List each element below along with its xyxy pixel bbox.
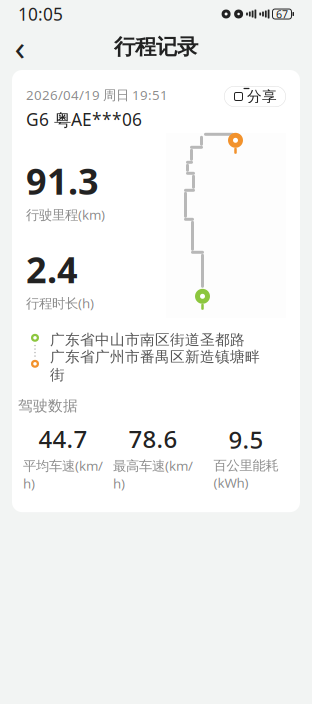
staticText: 最高车速(km/h)	[113, 457, 193, 492]
button[interactable]: Back	[0, 28, 40, 66]
staticText: 67	[276, 7, 288, 21]
staticText: 驾驶数据	[18, 397, 78, 415]
staticText: ‹	[14, 24, 25, 70]
staticText: 2026/04/19 周日 19:51	[26, 86, 168, 104]
staticText: 2.4	[26, 245, 78, 293]
staticText: 44.7	[38, 423, 87, 455]
staticText: 91.3	[26, 157, 99, 205]
staticText: 78.6	[128, 423, 177, 455]
staticText: 百公里能耗(kWh)	[213, 457, 278, 491]
button[interactable]: 分享	[224, 86, 286, 107]
staticText: 9.5	[228, 423, 263, 455]
staticText: 行驶里程(km)	[26, 206, 105, 223]
staticText: 行程时长(h)	[26, 294, 94, 312]
staticText: 行程记录	[114, 34, 198, 60]
staticText: 广东省广州市番禺区新造镇塘畔街	[50, 348, 260, 384]
staticText: 10:05	[18, 2, 63, 25]
staticText: 平均车速(km/h)	[23, 457, 103, 492]
staticText: 广东省中山市南区街道圣都路	[50, 331, 245, 349]
staticText: G6 粤AE***06	[26, 108, 142, 131]
staticText: 分享	[247, 87, 277, 105]
